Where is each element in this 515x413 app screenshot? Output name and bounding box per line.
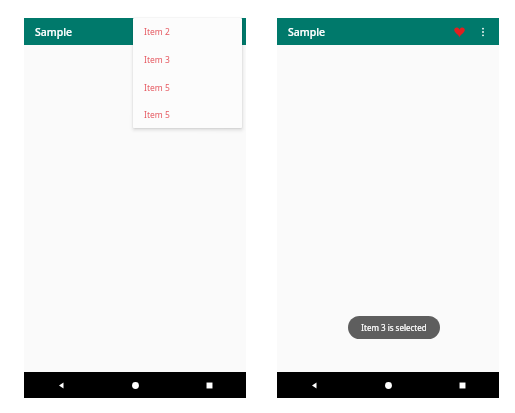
- staticText: Item 3 is selected: [361, 322, 427, 333]
- staticText: Item 5: [144, 82, 170, 94]
- button[interactable]: Favorite: [449, 22, 469, 42]
- button[interactable]: Home: [98, 372, 172, 398]
- button[interactable]: Recent apps: [172, 372, 246, 398]
- button[interactable]: Back: [277, 372, 351, 398]
- button[interactable]: Item 2: [133, 18, 242, 46]
- button[interactable]: Item 5: [133, 74, 242, 102]
- button[interactable]: Recent apps: [425, 372, 499, 398]
- staticText: Item 5: [144, 109, 170, 121]
- staticText: Item 2: [144, 26, 170, 38]
- staticText: Sample: [288, 25, 326, 39]
- button[interactable]: Item 3: [133, 46, 242, 74]
- staticText: Sample: [35, 25, 73, 39]
- button[interactable]: More options: [473, 22, 493, 42]
- staticText: Item 3: [144, 54, 170, 66]
- button[interactable]: Home: [351, 372, 425, 398]
- button[interactable]: Back: [24, 372, 98, 398]
- button[interactable]: Item 5: [133, 102, 242, 128]
